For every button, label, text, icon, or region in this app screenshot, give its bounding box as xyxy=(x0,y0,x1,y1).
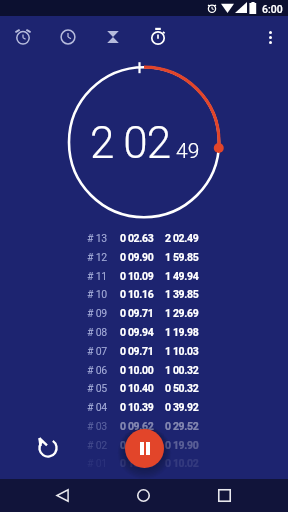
button[interactable]: Home xyxy=(128,480,159,511)
button[interactable]: Back xyxy=(47,480,78,511)
button[interactable]: # 12 xyxy=(0,249,288,264)
staticText: # 13 xyxy=(87,232,108,244)
staticText: 0 02.63 xyxy=(120,232,154,244)
button[interactable]: # 06 xyxy=(0,362,288,377)
staticText: 0 10.00 xyxy=(120,364,154,376)
button[interactable]: # 10 xyxy=(0,286,288,301)
staticText: 0 09.71 xyxy=(120,345,154,357)
staticText: # 12 xyxy=(87,251,108,263)
button[interactable]: Reset xyxy=(31,431,65,465)
staticText: # 06 xyxy=(87,364,108,376)
staticText: 0 09.94 xyxy=(120,326,154,338)
staticText: 49 xyxy=(176,139,200,164)
staticText: # 03 xyxy=(87,420,108,432)
staticText: 0 10.02 xyxy=(165,457,199,469)
staticText: 0 10.28 xyxy=(120,457,154,469)
staticText: 0 50.32 xyxy=(165,382,199,394)
button[interactable]: # 03 xyxy=(0,418,288,433)
button[interactable]: Clock xyxy=(45,17,90,57)
button[interactable]: Stopwatch xyxy=(135,17,180,57)
staticText: # 11 xyxy=(87,270,108,282)
staticText: 1 29.69 xyxy=(165,307,199,319)
button[interactable]: Pause xyxy=(125,429,164,468)
staticText: # 07 xyxy=(87,345,108,357)
staticText: 2 02.49 xyxy=(165,232,199,244)
button[interactable]: Recents xyxy=(209,480,240,511)
button[interactable]: # 08 xyxy=(0,324,288,339)
staticText: # 09 xyxy=(87,307,108,319)
staticText: 0 19.90 xyxy=(165,439,199,451)
button[interactable]: # 05 xyxy=(0,380,288,395)
staticText: 0 10.40 xyxy=(120,382,154,394)
staticText: 1 00.32 xyxy=(165,364,199,376)
staticText: 0 39.92 xyxy=(165,401,199,413)
button[interactable]: Timer xyxy=(90,17,135,57)
staticText: 6:00 xyxy=(262,3,283,15)
staticText: 0 29.52 xyxy=(165,420,199,432)
staticText: 0 10.09 xyxy=(120,270,154,282)
button[interactable]: Alarm xyxy=(0,17,45,57)
staticText: 2 02 xyxy=(90,117,171,169)
staticText: # 01 xyxy=(87,457,108,469)
button[interactable]: # 07 xyxy=(0,343,288,358)
button[interactable]: # 11 xyxy=(0,268,288,283)
button[interactable]: # 04 xyxy=(0,399,288,414)
button[interactable]: # 09 xyxy=(0,305,288,320)
staticText: 1 19.98 xyxy=(165,326,199,338)
staticText: 1 39.85 xyxy=(165,288,199,300)
staticText: 0 10.39 xyxy=(120,401,154,413)
staticText: # 08 xyxy=(87,326,108,338)
staticText: 1 10.03 xyxy=(165,345,199,357)
staticText: 0 09.71 xyxy=(120,307,154,319)
button[interactable]: # 13 xyxy=(0,230,288,245)
button[interactable]: More options xyxy=(252,19,288,55)
staticText: 1 49.94 xyxy=(165,270,199,282)
staticText: 0 09.90 xyxy=(120,251,154,263)
staticText: # 04 xyxy=(87,401,108,413)
button[interactable]: # 02 xyxy=(0,437,288,452)
staticText: 0 09.62 xyxy=(120,420,154,432)
staticText: 1 59.85 xyxy=(165,251,199,263)
staticText: 0 10.16 xyxy=(120,288,154,300)
staticText: 0 09.62 xyxy=(120,439,154,451)
staticText: # 02 xyxy=(87,439,108,451)
staticText: # 10 xyxy=(87,288,108,300)
button[interactable]: # 01 xyxy=(0,455,288,470)
staticText: # 05 xyxy=(87,382,108,394)
